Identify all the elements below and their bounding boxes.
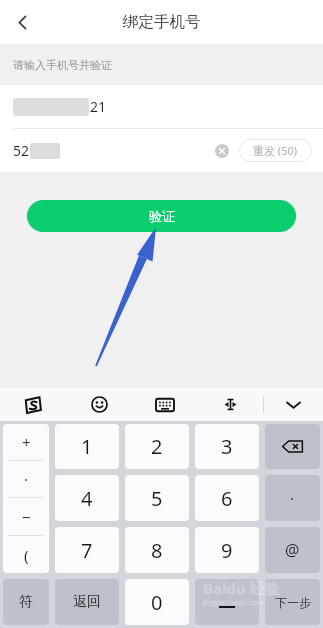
button[interactable]: Backspace xyxy=(265,424,320,469)
staticText: + xyxy=(22,432,31,452)
staticText: 7 xyxy=(81,537,93,564)
button[interactable]: 8 xyxy=(125,527,189,573)
button[interactable]: 1 xyxy=(55,424,119,469)
button[interactable]: 4 xyxy=(55,475,119,521)
button[interactable]: 符 xyxy=(3,579,49,625)
staticText: 2 xyxy=(151,433,163,460)
button[interactable]: 21 xyxy=(0,85,323,128)
button[interactable]: 返回 xyxy=(55,579,119,625)
staticText: 绑定手机号 xyxy=(123,12,201,32)
staticText: Baidu 经验 xyxy=(203,578,280,598)
button[interactable]: Sogou input xyxy=(0,388,66,421)
staticText: 21 xyxy=(90,97,107,116)
button[interactable]: 0 xyxy=(125,579,189,625)
staticText: 3 xyxy=(221,433,233,460)
button[interactable]: − xyxy=(3,498,49,535)
button[interactable]: 9 xyxy=(195,527,259,573)
staticText: 9 xyxy=(221,537,233,564)
button[interactable]: 2 xyxy=(125,424,189,469)
staticText: 0 xyxy=(151,589,163,616)
button[interactable]: 5 xyxy=(125,475,189,521)
button[interactable]: Keyboard layout xyxy=(132,388,198,421)
button[interactable]: 7 xyxy=(55,527,119,573)
staticText: · xyxy=(24,469,29,489)
button[interactable]: · xyxy=(265,475,320,521)
staticText: 请输入手机号并验证 xyxy=(13,58,112,72)
staticText: · xyxy=(290,488,295,508)
button[interactable]: Move cursor xyxy=(198,388,263,421)
button[interactable]: 重发 (50) xyxy=(239,139,312,162)
button[interactable]: Underscore xyxy=(195,579,259,625)
staticText: 52 xyxy=(13,141,30,160)
staticText: 5 xyxy=(151,485,163,512)
button[interactable]: Back xyxy=(0,0,44,44)
staticText: ( xyxy=(24,545,29,565)
button[interactable]: Clear xyxy=(210,139,234,163)
staticText: 8 xyxy=(151,537,163,564)
button[interactable]: Emoji xyxy=(66,388,132,421)
button[interactable]: ( xyxy=(3,536,49,573)
staticText: 1 xyxy=(81,433,93,460)
staticText: 符 xyxy=(19,593,33,611)
staticText: @ xyxy=(285,539,300,561)
button[interactable]: Hide keyboard xyxy=(264,388,323,421)
staticText: 返回 xyxy=(73,593,101,611)
button[interactable]: 6 xyxy=(195,475,259,521)
button[interactable]: 验证 xyxy=(27,200,296,232)
staticText: 6 xyxy=(221,485,233,512)
staticText: 重发 (50) xyxy=(253,143,298,158)
button[interactable]: 3 xyxy=(195,424,259,469)
staticText: 下一步 xyxy=(275,595,311,610)
staticText: jingyan.baidu.com xyxy=(203,598,264,608)
staticText: 4 xyxy=(81,485,93,512)
staticText: 验证 xyxy=(149,208,175,224)
button[interactable]: + xyxy=(3,424,49,460)
staticText: − xyxy=(22,507,31,527)
button[interactable]: 下一步 xyxy=(265,579,320,625)
button[interactable]: @ xyxy=(265,527,320,573)
button[interactable]: · xyxy=(3,461,49,497)
